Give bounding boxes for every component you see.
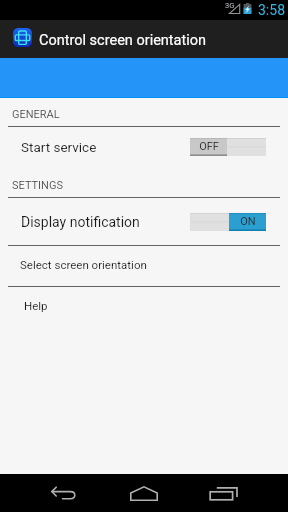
staticText: Control screen orientation — [39, 32, 207, 49]
staticText: GENERAL — [12, 108, 60, 121]
button[interactable]: Back — [40, 474, 88, 512]
button[interactable]: Start service — [0, 127, 288, 167]
button[interactable]: OFF — [190, 138, 266, 156]
staticText: Start service — [21, 139, 97, 155]
staticText: 3:58 — [258, 2, 285, 18]
staticText: OFF — [199, 140, 219, 153]
button[interactable]: Help — [0, 287, 288, 327]
button[interactable]: Recent apps — [200, 474, 248, 512]
staticText: 3G — [225, 1, 235, 10]
button[interactable]: Select screen orientation — [0, 246, 288, 286]
staticText: Help — [24, 299, 48, 312]
button[interactable]: Home — [120, 474, 168, 512]
button[interactable]: Display notification — [0, 198, 288, 245]
staticText: Select screen orientation — [20, 258, 147, 271]
button[interactable]: ON — [190, 213, 266, 231]
staticText: ON — [240, 215, 256, 228]
staticText: Display notification — [21, 214, 140, 230]
staticText: SETTINGS — [12, 179, 63, 192]
